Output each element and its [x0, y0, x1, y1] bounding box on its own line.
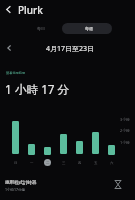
button[interactable]: 每週 — [62, 23, 112, 34]
staticText: 二 — [46, 161, 50, 165]
staticText: 2小時 — [120, 128, 130, 133]
button[interactable]: Back — [0, 0, 16, 18]
staticText: 三 — [62, 161, 66, 165]
staticText: 四 — [78, 161, 82, 165]
staticText: 3小時 — [120, 117, 130, 122]
button[interactable]: 每日 — [16, 23, 66, 34]
staticText: 1小時 — [120, 140, 130, 145]
staticText: 應用程式計時器 — [5, 180, 37, 186]
staticText: 六 — [110, 161, 114, 165]
button[interactable]: 應用程式計時器 — [5, 173, 122, 200]
staticText: 4月17日至23日 — [46, 44, 95, 54]
staticText: 五 — [94, 161, 98, 165]
staticText: 螢幕使用時間 — [6, 71, 26, 75]
staticText: 每週 — [85, 26, 93, 31]
staticText: Plurk — [18, 3, 43, 17]
staticText: 一 — [30, 161, 34, 165]
button[interactable]: Previous week — [1, 41, 17, 55]
staticText: 日 — [14, 161, 18, 165]
staticText: 每日 — [37, 26, 45, 31]
staticText: 1小時17分鐘 — [5, 187, 26, 192]
staticText: 1 小時 17 分 — [5, 81, 70, 97]
